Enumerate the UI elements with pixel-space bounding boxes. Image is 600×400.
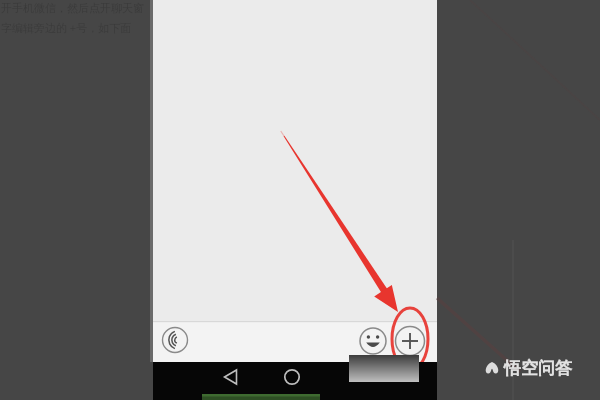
- button[interactable]: Voice message: [157, 326, 187, 356]
- staticText: 悟空问答: [504, 358, 572, 379]
- staticText: 开手机微信，然后点开聊天窗: [1, 1, 144, 15]
- button[interactable]: More, add attachment: [394, 325, 426, 357]
- button[interactable]: Home: [277, 364, 309, 392]
- button[interactable]: Back: [215, 364, 247, 392]
- button[interactable]: Emoji: [358, 326, 388, 356]
